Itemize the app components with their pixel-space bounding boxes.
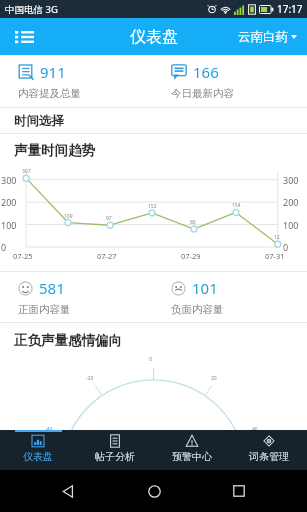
button[interactable]: 166 — [153, 55, 307, 107]
staticText: 07-29 — [181, 251, 201, 261]
staticText: 166 — [193, 62, 219, 82]
button[interactable]: 101 — [153, 272, 307, 322]
staticText: 内容提及总量 — [18, 87, 81, 100]
staticText: 中国电信 3G — [5, 3, 58, 16]
staticText: 07-27 — [97, 251, 117, 261]
button[interactable]: 仪表盘 — [0, 430, 76, 470]
button[interactable]: 911 — [0, 55, 153, 107]
staticText: 0 — [149, 356, 152, 363]
staticText: 负面内容量 — [171, 303, 224, 316]
staticText: 581 — [39, 278, 65, 298]
staticText: 97 — [106, 215, 112, 222]
button[interactable]: Recents — [222, 474, 256, 508]
staticText: 100 — [283, 219, 299, 231]
staticText: 0 — [283, 241, 289, 253]
button[interactable]: 时间选择 — [0, 108, 307, 134]
staticText: 0 — [1, 241, 7, 253]
staticText: 正面内容量 — [18, 303, 71, 316]
button[interactable]: 云南白药 — [235, 24, 300, 50]
staticText: 911 — [40, 62, 66, 82]
button[interactable]: Home — [137, 474, 171, 508]
staticText: 07-31 — [265, 251, 285, 261]
button[interactable]: Menu — [8, 21, 40, 53]
staticText: 154 — [232, 202, 241, 209]
staticText: 20 — [211, 375, 217, 382]
staticText: 正负声量感情偏向 — [14, 332, 122, 349]
button[interactable]: 581 — [0, 272, 153, 322]
staticText: 词条管理 — [249, 450, 289, 463]
staticText: 帖子分析 — [95, 450, 135, 463]
staticText: 200 — [1, 196, 17, 208]
staticText: 仪表盘 — [23, 450, 53, 463]
staticText: 300 — [283, 174, 299, 186]
staticText: 200 — [283, 196, 299, 208]
staticText: 预警中心 — [172, 450, 212, 463]
staticText: 109 — [64, 213, 73, 220]
button[interactable]: 帖子分析 — [76, 430, 153, 470]
staticText: 声量时间趋势 — [14, 142, 95, 159]
staticText: 300 — [1, 174, 17, 186]
staticText: 307 — [22, 168, 31, 175]
staticText: 仪表盘 — [130, 27, 178, 47]
button[interactable]: Back — [51, 474, 85, 508]
staticText: 12 — [274, 234, 280, 241]
staticText: 152 — [148, 203, 157, 210]
staticText: 17:17 — [277, 2, 303, 16]
staticText: 时间选择 — [14, 113, 64, 129]
staticText: 07-25 — [13, 251, 33, 261]
staticText: 101 — [192, 278, 218, 298]
staticText: 100 — [1, 219, 17, 231]
button[interactable]: 词条管理 — [230, 430, 307, 470]
staticText: 40 — [252, 426, 258, 433]
staticText: 80 — [190, 219, 196, 226]
staticText: 云南白药 — [238, 29, 288, 45]
staticText: 今日最新内容 — [171, 87, 234, 100]
button[interactable]: 预警中心 — [153, 430, 230, 470]
staticText: -20 — [86, 375, 94, 382]
staticText: -40 — [45, 426, 53, 433]
